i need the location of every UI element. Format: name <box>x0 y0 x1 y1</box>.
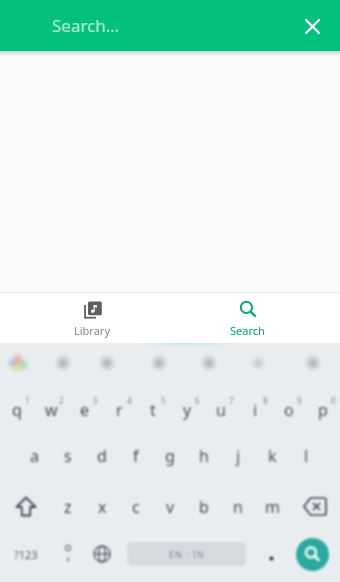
button[interactable]: m <box>255 482 289 531</box>
staticText: e <box>80 399 90 421</box>
button[interactable]: EN · IN <box>119 530 254 578</box>
button[interactable]: z <box>51 482 85 531</box>
button[interactable]: d <box>85 432 119 480</box>
button[interactable]: Library <box>15 293 170 343</box>
staticText: y <box>183 399 192 421</box>
staticText: 9 <box>297 395 302 406</box>
staticText: l <box>304 445 309 467</box>
staticText: r <box>116 399 123 421</box>
button[interactable]: n <box>221 482 255 531</box>
staticText: t <box>150 399 156 421</box>
staticText: i <box>253 399 258 421</box>
button[interactable]: y <box>170 385 204 434</box>
staticText: q <box>12 399 22 421</box>
button[interactable]: o <box>272 385 306 434</box>
staticText: n <box>233 496 243 518</box>
button[interactable]: k <box>255 432 289 480</box>
staticText: Search <box>230 323 265 338</box>
staticText: 4 <box>127 395 132 406</box>
button[interactable]: ?123 <box>0 530 51 578</box>
staticText: 8 <box>263 395 268 406</box>
button[interactable]: q <box>0 385 34 434</box>
button[interactable]: v <box>153 482 187 531</box>
button[interactable]: e <box>68 385 102 434</box>
button[interactable] <box>254 530 288 578</box>
staticText: 5 <box>161 395 166 406</box>
staticText: m <box>265 496 280 518</box>
staticText: j <box>236 445 241 467</box>
staticText: s <box>64 445 72 467</box>
staticText: Search… <box>52 14 120 37</box>
staticText: a <box>30 445 39 467</box>
staticText: b <box>199 496 209 518</box>
staticText: k <box>268 445 277 467</box>
staticText: w <box>45 399 58 421</box>
staticText: u <box>216 399 226 421</box>
button[interactable] <box>289 482 340 531</box>
button[interactable]: w <box>34 385 68 434</box>
button[interactable] <box>0 482 51 531</box>
staticText: c <box>132 496 140 518</box>
button[interactable]: r <box>102 385 136 434</box>
button[interactable]: g <box>153 432 187 480</box>
staticText: g <box>165 445 175 467</box>
staticText: v <box>166 496 175 518</box>
button[interactable] <box>51 530 85 578</box>
button[interactable]: h <box>187 432 221 480</box>
staticText: 6 <box>195 395 200 406</box>
button[interactable] <box>85 530 119 578</box>
staticText: o <box>284 399 294 421</box>
staticText: 3 <box>93 395 98 406</box>
staticText: ?123 <box>14 547 38 562</box>
button[interactable]: x <box>85 482 119 531</box>
button[interactable]: f <box>119 432 153 480</box>
button[interactable]: u <box>204 385 238 434</box>
button[interactable]: j <box>221 432 255 480</box>
button[interactable]: b <box>187 482 221 531</box>
button[interactable]: l <box>289 432 323 480</box>
button[interactable] <box>300 14 324 38</box>
staticText: f <box>133 445 139 467</box>
button[interactable]: p <box>306 385 340 434</box>
staticText: 1 <box>25 395 30 406</box>
button[interactable]: s <box>51 432 85 480</box>
staticText: 7 <box>229 395 234 406</box>
button[interactable]: Search <box>170 293 325 343</box>
staticText: z <box>64 496 72 518</box>
button[interactable]: a <box>17 432 51 480</box>
button[interactable] <box>286 530 338 578</box>
staticText: p <box>318 399 328 421</box>
staticText: x <box>98 496 107 518</box>
staticText: d <box>97 445 107 467</box>
button[interactable]: t <box>136 385 170 434</box>
staticText: Library <box>74 323 111 338</box>
staticText: EN · IN <box>169 548 205 560</box>
button[interactable]: i <box>238 385 272 434</box>
staticText: 2 <box>59 395 64 406</box>
staticText: h <box>199 445 209 467</box>
button[interactable]: c <box>119 482 153 531</box>
staticText: 0 <box>331 395 336 406</box>
